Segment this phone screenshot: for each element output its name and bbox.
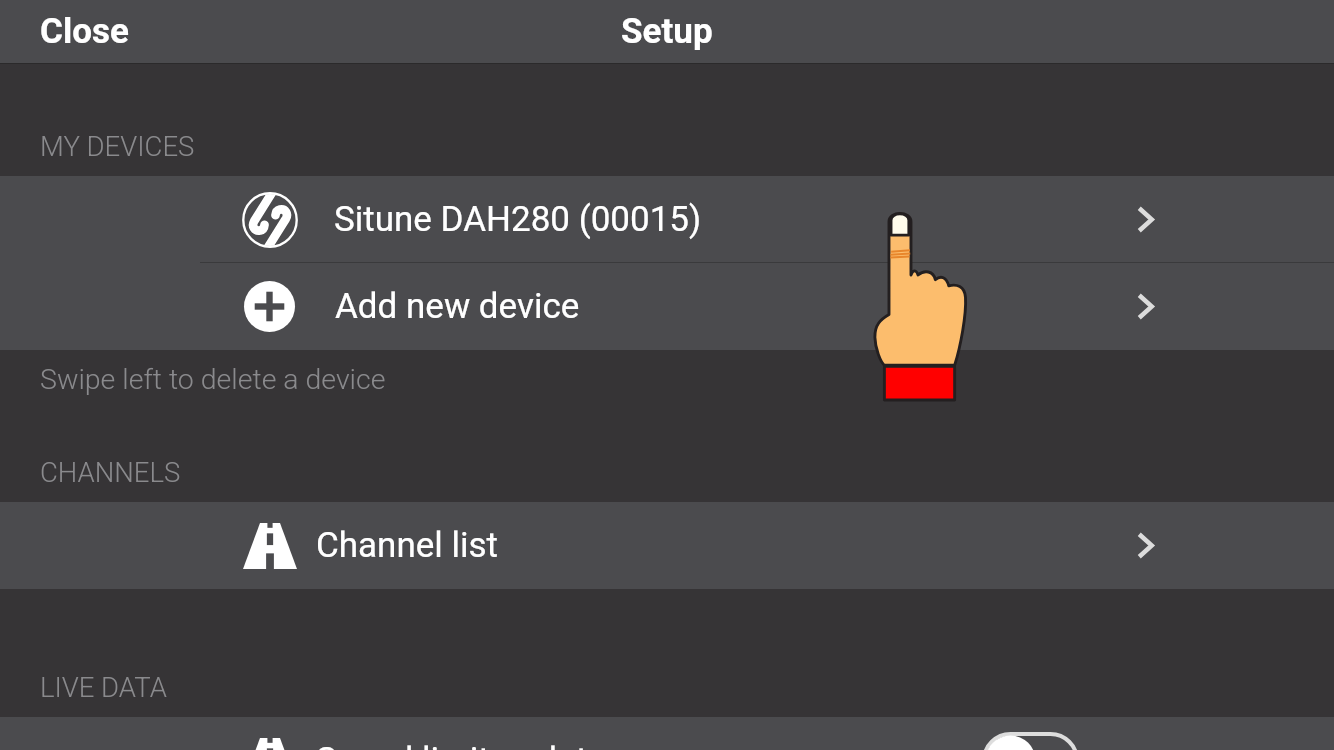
staticText: Situne DAH280 (00015)	[334, 199, 702, 240]
staticText: Speed limit updates	[316, 740, 625, 750]
staticText: CHANNELS	[40, 456, 181, 488]
other: Open	[1137, 293, 1154, 320]
staticText: Add new device	[335, 286, 580, 327]
button[interactable]: Speed limit updates	[0, 717, 1334, 750]
staticText: Swipe left to delete a device	[40, 363, 386, 396]
staticText: Setup	[621, 11, 713, 52]
staticText: Channel list	[316, 525, 499, 566]
button[interactable]: Speed limit updates toggle	[982, 732, 1079, 750]
button[interactable]: Channel list	[0, 502, 1334, 589]
other: Open	[1137, 206, 1154, 233]
staticText: LIVE DATA	[40, 671, 167, 703]
button[interactable]: Close	[0, 3, 159, 60]
button[interactable]: Situne DAH280 (00015)	[0, 176, 1334, 263]
staticText: MY DEVICES	[40, 130, 195, 162]
staticText: Close	[40, 11, 129, 52]
button[interactable]: Add new device	[0, 263, 1334, 350]
other: Open	[1137, 532, 1154, 559]
